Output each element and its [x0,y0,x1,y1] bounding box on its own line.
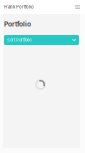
button[interactable]: Menu [75,5,80,9]
staticText: Frank Portfolio [4,4,34,10]
staticText: Portfolio [4,20,31,28]
staticText: Sort Portfolio [7,38,31,42]
button[interactable]: Sort Portfolio [4,35,79,45]
